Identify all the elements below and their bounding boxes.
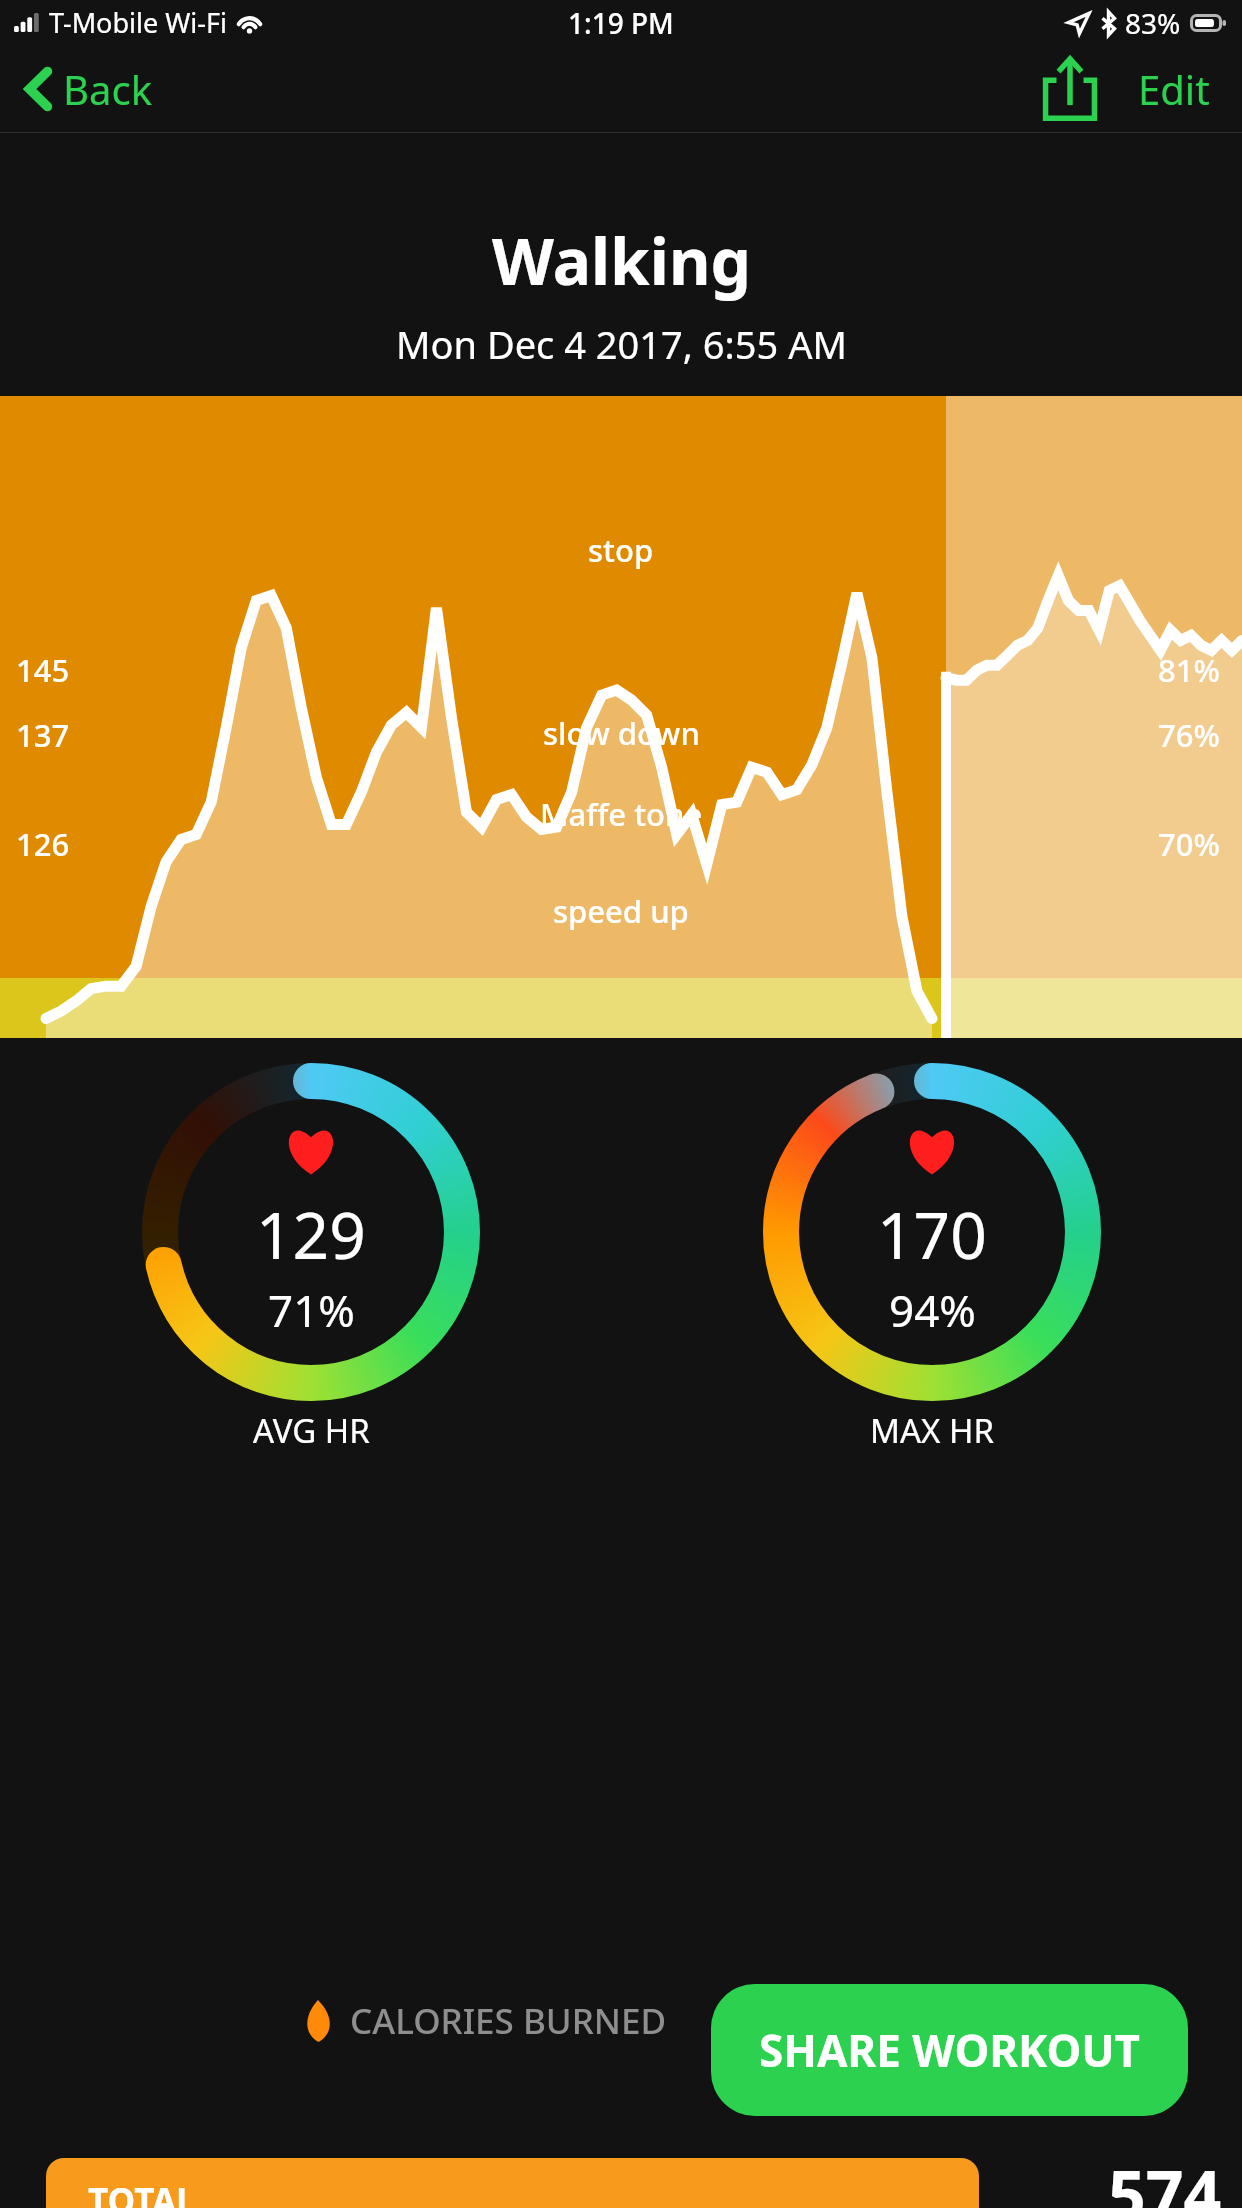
staticText: 137	[16, 714, 70, 756]
button[interactable]: 170	[760, 1060, 1104, 1453]
button[interactable]: TOTAL	[46, 2158, 979, 2208]
staticText: 70%	[1158, 823, 1220, 865]
staticText: 574	[1108, 2148, 1222, 2208]
button[interactable]: Back	[18, 52, 160, 126]
staticText: speed up	[553, 890, 689, 932]
button[interactable]: 129	[139, 1060, 483, 1453]
staticText: 81%	[1158, 649, 1220, 691]
button[interactable]: Share	[1034, 48, 1106, 130]
staticText: Back	[63, 62, 152, 116]
staticText: T-Mobile Wi-Fi	[49, 4, 227, 41]
staticText: 129	[256, 1191, 366, 1278]
staticText: slow down	[543, 712, 700, 754]
staticText: 94%	[889, 1280, 976, 1340]
staticText: stop	[588, 529, 654, 571]
staticText: 126	[16, 823, 70, 865]
staticText: 145	[16, 649, 70, 691]
staticText: 76%	[1158, 714, 1220, 756]
button[interactable]: Edit	[1130, 52, 1218, 126]
staticText: SHARE WORKOUT	[759, 2020, 1140, 2080]
staticText: Walking	[492, 217, 751, 304]
staticText: Edit	[1138, 62, 1210, 116]
staticText: AVG HR	[253, 1408, 370, 1453]
staticText: MAX HR	[870, 1408, 994, 1453]
staticText: 1:19 PM	[568, 4, 674, 42]
button[interactable]: SHARE WORKOUT	[711, 1984, 1188, 2116]
staticText: Maffe tone	[540, 793, 703, 835]
staticText: TOTAL	[88, 2177, 196, 2208]
staticText: 71%	[268, 1280, 355, 1340]
staticText: Mon Dec 4 2017, 6:55 AM	[396, 318, 847, 370]
staticText: 170	[877, 1191, 987, 1278]
staticText: CALORIES BURNED	[350, 1997, 667, 2045]
staticText: 83%	[1125, 4, 1181, 42]
